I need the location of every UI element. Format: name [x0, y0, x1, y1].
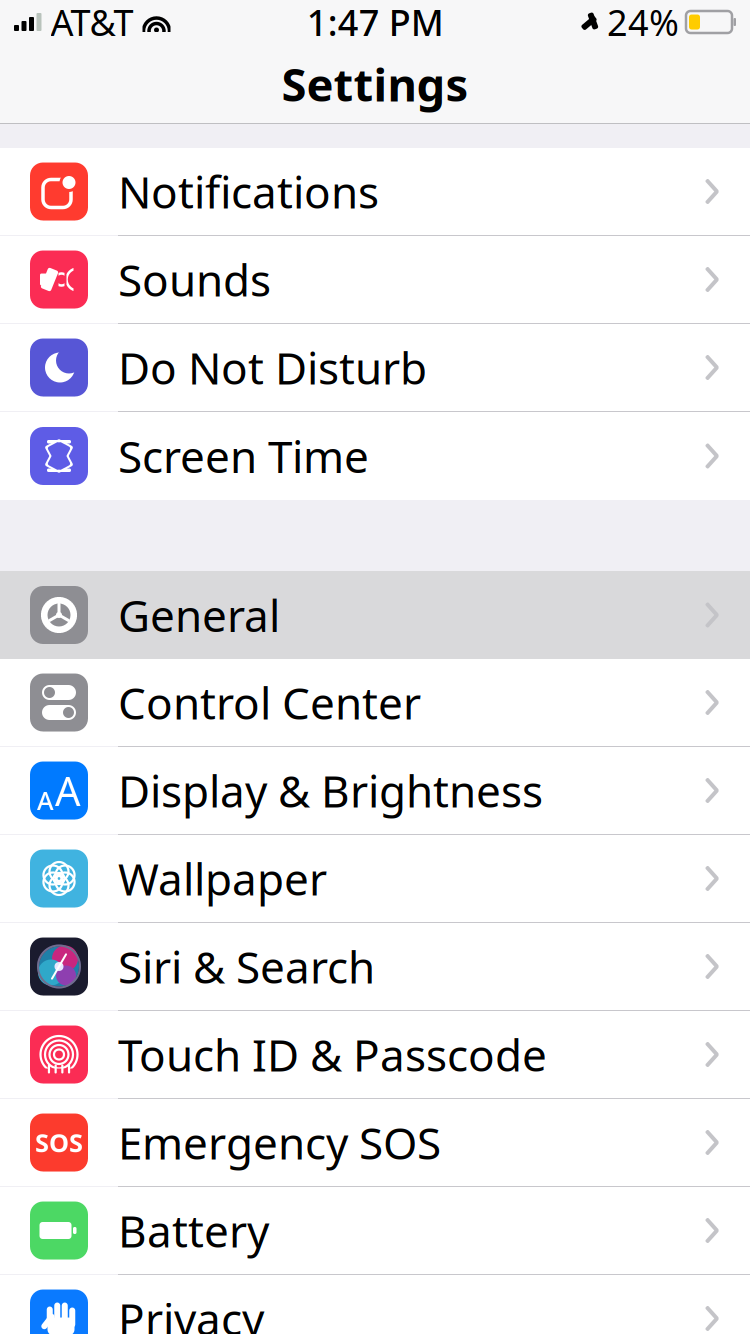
button[interactable]: A — [0, 747, 750, 835]
staticText: Siri & Search — [118, 937, 375, 996]
button[interactable]: Screen Time — [0, 412, 750, 500]
button[interactable]: Battery — [0, 1187, 750, 1275]
staticText: 24% — [607, 0, 679, 46]
staticText: Notifications — [118, 162, 379, 221]
staticText: Privacy — [118, 1289, 264, 1334]
button[interactable]: Privacy — [0, 1275, 750, 1334]
button[interactable]: Control Center — [0, 659, 750, 747]
button[interactable]: Wallpaper — [0, 835, 750, 923]
button[interactable]: Notifications — [0, 148, 750, 236]
staticText: Emergency SOS — [118, 1113, 441, 1172]
button[interactable]: Sounds — [0, 236, 750, 324]
staticText: Settings — [281, 54, 468, 114]
staticText: Touch ID & Passcode — [118, 1025, 547, 1084]
staticText: Control Center — [118, 673, 421, 732]
button[interactable]: Siri & Search — [0, 923, 750, 1011]
staticText: Sounds — [118, 250, 271, 309]
staticText: Screen Time — [118, 427, 369, 485]
staticText: Battery — [118, 1201, 269, 1260]
staticText: SOS — [35, 1126, 83, 1159]
staticText: Wallpaper — [118, 849, 327, 908]
button[interactable]: General — [0, 571, 750, 659]
staticText: General — [118, 586, 280, 644]
button[interactable]: Touch ID & Passcode — [0, 1011, 750, 1099]
button[interactable]: Do Not Disturb — [0, 324, 750, 412]
staticText: 1:47 PM — [307, 0, 444, 46]
staticText: A — [37, 783, 54, 817]
staticText: AT&T — [50, 0, 133, 46]
staticText: A — [55, 764, 81, 817]
staticText: Display & Brightness — [118, 761, 543, 820]
button[interactable]: SOS — [0, 1099, 750, 1187]
staticText: Do Not Disturb — [118, 338, 427, 397]
